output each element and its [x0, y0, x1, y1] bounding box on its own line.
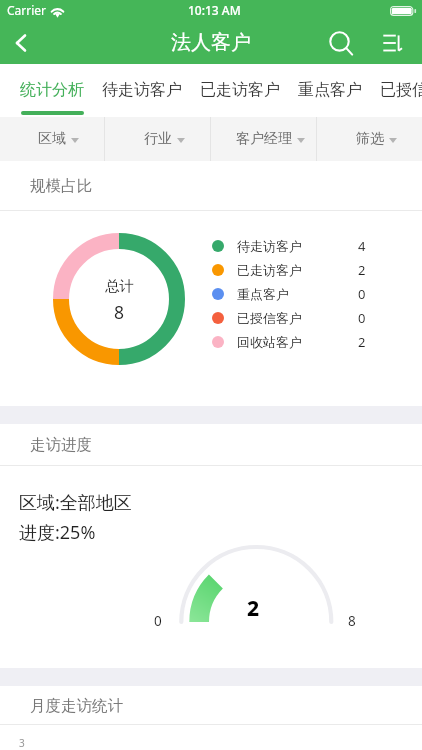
button[interactable]: Sort	[370, 22, 414, 64]
staticText: 4	[358, 237, 366, 255]
button[interactable]: 重点客户	[298, 64, 380, 117]
staticText: 待走访客户	[237, 238, 302, 254]
button[interactable]: Search	[317, 22, 362, 64]
staticText: 客户经理	[236, 130, 292, 148]
staticText: 筛选	[356, 130, 384, 148]
staticText: 进度:25%	[19, 520, 96, 545]
button[interactable]: 统计分析	[20, 64, 102, 117]
staticText: 10:13 AM	[188, 2, 241, 18]
button[interactable]: 筛选	[317, 117, 422, 161]
staticText: 区域	[38, 130, 66, 148]
staticText: 法人客户	[171, 30, 251, 55]
staticText: 0	[154, 612, 162, 630]
button[interactable]: 客户经理	[211, 117, 316, 161]
button[interactable]: 待走访客户	[102, 64, 200, 117]
staticText: 区域:全部地区	[19, 490, 132, 515]
staticText: 已授信客户	[237, 310, 302, 326]
staticText: 规模占比	[30, 176, 92, 196]
staticText: 已走访客户	[200, 80, 280, 100]
staticText: Carrier	[7, 2, 47, 18]
staticText: 月度走访统计	[30, 696, 123, 716]
staticText: 8	[114, 300, 125, 324]
button[interactable]: 已走访客户	[200, 64, 298, 117]
staticText: 2	[247, 594, 260, 623]
staticText: 重点客户	[298, 80, 362, 100]
staticText: 总计	[105, 277, 134, 295]
staticText: 回收站客户	[237, 334, 302, 350]
staticText: 待走访客户	[102, 80, 182, 100]
staticText: 2	[358, 333, 366, 351]
staticText: 统计分析	[20, 80, 84, 100]
staticText: 重点客户	[237, 286, 289, 302]
staticText: 3	[19, 736, 25, 750]
staticText: 已走访客户	[237, 262, 302, 278]
button[interactable]: 区域	[0, 117, 104, 161]
staticText: 8	[348, 612, 356, 630]
button[interactable]: 已授信客户	[380, 64, 422, 117]
staticText: 走访进度	[30, 435, 92, 455]
button[interactable]: Back	[0, 22, 41, 64]
staticText: 已授信客户	[380, 80, 422, 100]
staticText: 0	[358, 285, 366, 303]
staticText: 行业	[144, 130, 172, 148]
staticText: 0	[358, 309, 366, 327]
staticText: 2	[358, 261, 366, 279]
button[interactable]: 行业	[105, 117, 210, 161]
